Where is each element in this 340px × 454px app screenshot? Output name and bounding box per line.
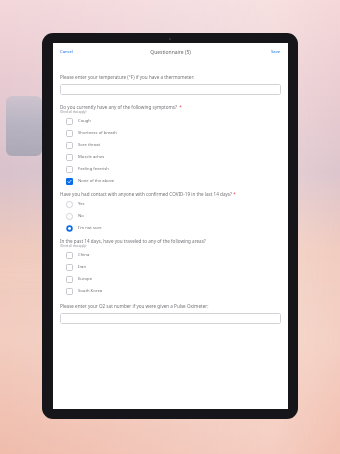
staticText: Have you had contact with anyone with co… [60, 191, 232, 197]
button[interactable]: South Korea [60, 285, 281, 297]
staticText: No [78, 213, 84, 219]
staticText: In the past 14 days, have you traveled t… [60, 238, 206, 244]
button[interactable]: I'm not sure [60, 222, 281, 234]
staticText: Please enter your O2 sat number if you w… [60, 303, 209, 309]
button[interactable]: Save [268, 47, 284, 57]
staticText: Cancel [60, 49, 74, 55]
button[interactable]: Muscle aches [60, 151, 281, 163]
staticText: * [178, 104, 182, 110]
button[interactable]: Cancel [57, 47, 77, 57]
staticText: Iran [78, 264, 87, 270]
staticText: Europe [78, 276, 93, 282]
button[interactable]: Sore throat [60, 139, 281, 151]
staticText: South Korea [78, 288, 103, 294]
staticText: Sore throat [78, 142, 101, 148]
staticText: (Check all that apply) [60, 110, 87, 114]
staticText: Shortness of breath [78, 130, 117, 136]
staticText: Cough [78, 118, 91, 124]
button[interactable]: Iran [60, 261, 281, 273]
staticText: Muscle aches [78, 154, 105, 160]
button[interactable]: Shortness of breath [60, 127, 281, 139]
staticText: China [78, 252, 90, 258]
staticText: None of the above [78, 178, 115, 184]
button[interactable]: None of the above [60, 175, 281, 187]
button[interactable]: No [60, 210, 281, 222]
staticText: Feeling feverish [78, 166, 109, 172]
staticText: * [232, 191, 236, 197]
button[interactable] [60, 313, 281, 324]
button[interactable]: Europe [60, 273, 281, 285]
button[interactable] [60, 84, 281, 95]
staticText: (Check all that apply) [60, 244, 87, 248]
button[interactable]: Feeling feverish [60, 163, 281, 175]
staticText: I'm not sure [78, 225, 102, 231]
staticText: Please enter your temperature (°F) if yo… [60, 74, 195, 80]
staticText: Questionnaire (5) [150, 49, 191, 56]
button[interactable]: Cough [60, 115, 281, 127]
staticText: Do you currently have any of the followi… [60, 104, 178, 110]
button[interactable]: Yes [60, 198, 281, 210]
staticText: Save [271, 49, 281, 55]
staticText: Yes [78, 201, 85, 207]
button[interactable]: China [60, 249, 281, 261]
